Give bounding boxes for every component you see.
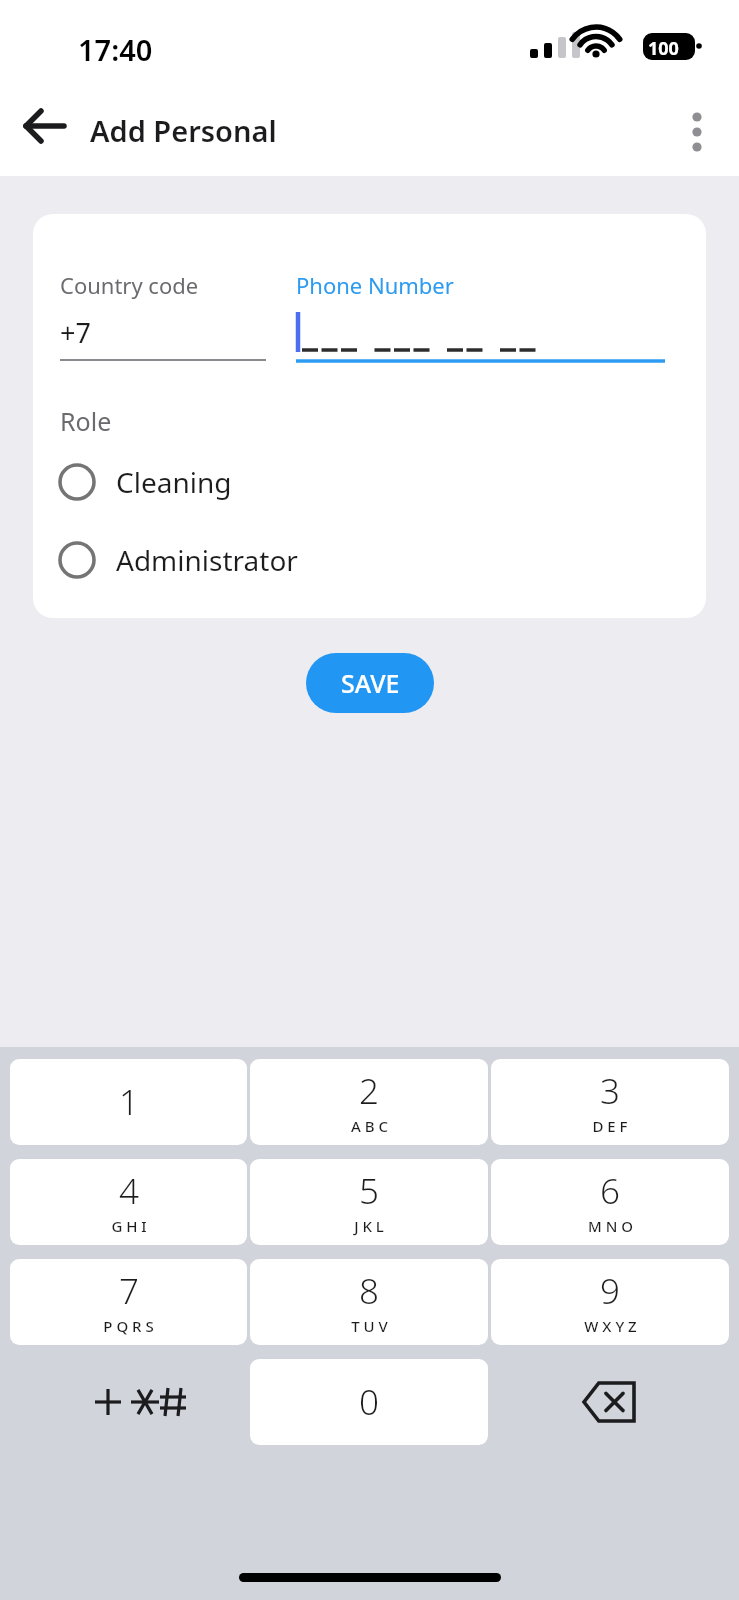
button[interactable]: Back	[18, 98, 74, 154]
staticText: Role	[60, 404, 112, 438]
staticText: 5	[359, 1167, 379, 1215]
staticText: Phone Number	[296, 270, 454, 300]
staticText: A B C	[351, 1116, 388, 1136]
button[interactable]: SAVE	[306, 653, 434, 713]
button[interactable]: 3	[491, 1059, 729, 1145]
button[interactable]: Cleaning	[33, 450, 706, 514]
button[interactable]: 0	[250, 1359, 488, 1445]
staticText: 8	[359, 1267, 379, 1315]
button[interactable]: Symbols	[10, 1359, 247, 1445]
button[interactable]: 9	[491, 1259, 729, 1345]
staticText: Country code	[60, 270, 199, 300]
staticText: 2	[359, 1067, 379, 1115]
staticText: SAVE	[341, 666, 400, 700]
staticText: 17:40	[78, 30, 153, 69]
staticText: Administrator	[116, 541, 298, 579]
staticText: 3	[600, 1067, 620, 1115]
staticText: T U V	[351, 1316, 388, 1336]
button[interactable]: Administrator	[33, 528, 706, 592]
staticText: 7	[119, 1267, 139, 1315]
staticText: Add Personal	[90, 111, 277, 150]
staticText: 6	[600, 1167, 620, 1215]
button[interactable]: 8	[250, 1259, 488, 1345]
button[interactable]: 4	[10, 1159, 247, 1245]
staticText: G H I	[111, 1216, 147, 1236]
staticText: M N O	[588, 1216, 633, 1236]
staticText: J K L	[354, 1216, 384, 1236]
staticText: 100	[648, 36, 679, 61]
button[interactable]: 7	[10, 1259, 247, 1345]
staticText: 4	[119, 1167, 139, 1215]
button[interactable]: Backspace	[491, 1359, 729, 1445]
button[interactable]: More options	[669, 104, 725, 160]
staticText: W X Y Z	[584, 1316, 637, 1336]
staticText: Cleaning	[116, 463, 232, 501]
staticText: +7	[60, 314, 91, 351]
staticText: D E F	[592, 1116, 628, 1136]
staticText: 9	[600, 1267, 620, 1315]
staticText: P Q R S	[103, 1316, 154, 1336]
staticText: 1	[119, 1078, 139, 1126]
staticText: 0	[359, 1378, 379, 1426]
button[interactable]: 2	[250, 1059, 488, 1145]
button[interactable]: 1	[10, 1059, 247, 1145]
button[interactable]: 6	[491, 1159, 729, 1245]
button[interactable]: 5	[250, 1159, 488, 1245]
